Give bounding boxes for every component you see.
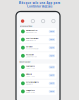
staticText: Recepción bbox=[26, 54, 34, 56]
staticText: 18:00 – 19:00 bbox=[26, 75, 35, 77]
staticText: Abrir bbox=[50, 74, 54, 76]
staticText: Piso 3 · Puerta A bbox=[26, 32, 37, 33]
staticText: 10:00 – 11:30 bbox=[26, 67, 35, 69]
staticText: Garaje B1 bbox=[26, 46, 33, 48]
button[interactable]: Llaves bbox=[31, 19, 35, 23]
button[interactable]: Oficina Central bbox=[19, 28, 56, 35]
staticText: 20:00 – 21:00 bbox=[26, 92, 35, 93]
staticText: Edificio Norte bbox=[26, 40, 36, 41]
staticText: Controlar Accesos bbox=[27, 5, 52, 8]
staticText: Abrir bbox=[50, 31, 54, 32]
button[interactable]: Gimnasio bbox=[19, 72, 56, 79]
staticText: Abrir bbox=[50, 66, 54, 68]
staticText: Accesos Activos bbox=[19, 25, 32, 27]
staticText: Acceso vehicular bbox=[26, 48, 39, 50]
staticText: Lobby · Torre A bbox=[26, 56, 37, 58]
button[interactable]: Perfil bbox=[20, 19, 25, 23]
button[interactable]: Ajustes bbox=[51, 19, 55, 23]
staticText: Abrir bbox=[50, 82, 54, 84]
staticText: Reservas Hoy bbox=[19, 61, 30, 63]
button[interactable]: Sala Polanco bbox=[19, 64, 56, 71]
staticText: Abrir bbox=[50, 47, 54, 49]
staticText: Abrir bbox=[50, 91, 54, 92]
staticText: Oficina Central bbox=[26, 30, 37, 31]
button[interactable]: Puerta Principal bbox=[19, 36, 56, 43]
button[interactable]: Garaje B1 bbox=[19, 44, 56, 51]
staticText: Sala Polanco bbox=[26, 65, 35, 67]
staticText: Estacionamiento bbox=[26, 81, 39, 83]
staticText: Más que solo una App para bbox=[18, 1, 60, 5]
staticText: Nivel 2 · B12 bbox=[26, 83, 33, 85]
button[interactable]: Estacionamiento bbox=[19, 80, 56, 87]
staticText: Gimnasio bbox=[26, 73, 32, 75]
button[interactable]: Historial bbox=[41, 19, 45, 23]
staticText: Abrir bbox=[50, 55, 54, 57]
button[interactable]: Recepción bbox=[19, 52, 56, 59]
staticText: Sala Juntas 2 bbox=[26, 89, 35, 91]
button[interactable]: Sala Juntas 2 bbox=[19, 88, 56, 95]
staticText: Abrir bbox=[50, 39, 54, 40]
staticText: Puerta Principal bbox=[26, 38, 38, 39]
